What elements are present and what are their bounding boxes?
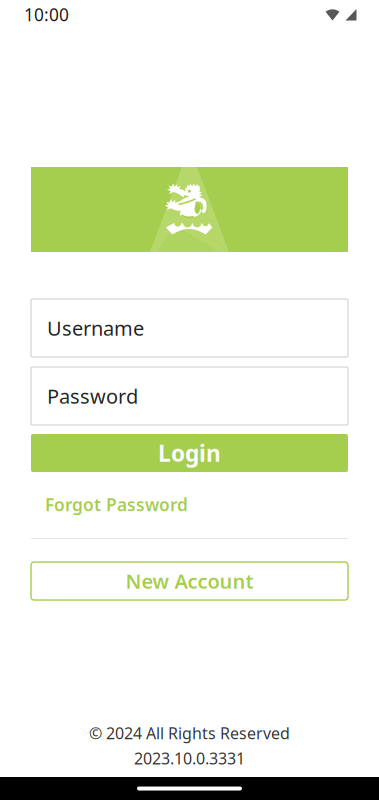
staticText: Username <box>47 315 144 341</box>
button[interactable]: Login <box>31 434 348 472</box>
staticText: 2023.10.0.3331 <box>134 748 245 769</box>
staticText: © 2024 All Rights Reserved <box>89 722 290 744</box>
button[interactable]: Forgot Password <box>31 491 194 518</box>
button[interactable]: Username <box>31 299 348 357</box>
staticText: Forgot Password <box>45 493 188 516</box>
staticText: 10:00 <box>24 3 69 26</box>
staticText: Login <box>158 438 221 468</box>
button[interactable]: New Account <box>31 562 348 600</box>
staticText: New Account <box>125 568 253 594</box>
staticText: Password <box>47 383 138 409</box>
button[interactable]: Password <box>31 367 348 425</box>
